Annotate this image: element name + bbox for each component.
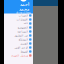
staticText: تسجيل الخروج	[11, 54, 28, 57]
staticText: الحساب	[18, 14, 28, 17]
button[interactable]: عن التطبيق	[4, 33, 33, 37]
button[interactable]: الإشعارات	[4, 17, 33, 21]
staticText: الدعم الفني	[14, 46, 28, 49]
staticText: اللغة	[23, 22, 28, 25]
staticText: أحمد محمد	[18, 2, 28, 11]
staticText: المساعدة	[17, 30, 28, 33]
staticText: المشاركة	[18, 38, 28, 41]
button[interactable]: المشاركة	[4, 37, 33, 41]
button[interactable]: اللغة	[4, 21, 33, 25]
button[interactable]: الحساب	[4, 13, 33, 17]
button[interactable]: الخصوصية	[4, 25, 33, 29]
staticText: ahmed@example.com	[16, 11, 31, 18]
button[interactable]: المساعدة	[4, 29, 33, 33]
button[interactable]: الدعم الفني	[4, 45, 33, 49]
button[interactable]: تسجيل الخروج	[4, 53, 33, 57]
staticText: الشروط	[20, 50, 28, 53]
staticText: التقييم	[20, 42, 28, 45]
button[interactable]: الشروط	[4, 49, 33, 53]
staticText: الخصوصية	[17, 26, 28, 29]
staticText: الإشعارات	[16, 18, 28, 21]
staticText: عن التطبيق	[14, 34, 28, 37]
button[interactable]: التقييم	[4, 41, 33, 45]
